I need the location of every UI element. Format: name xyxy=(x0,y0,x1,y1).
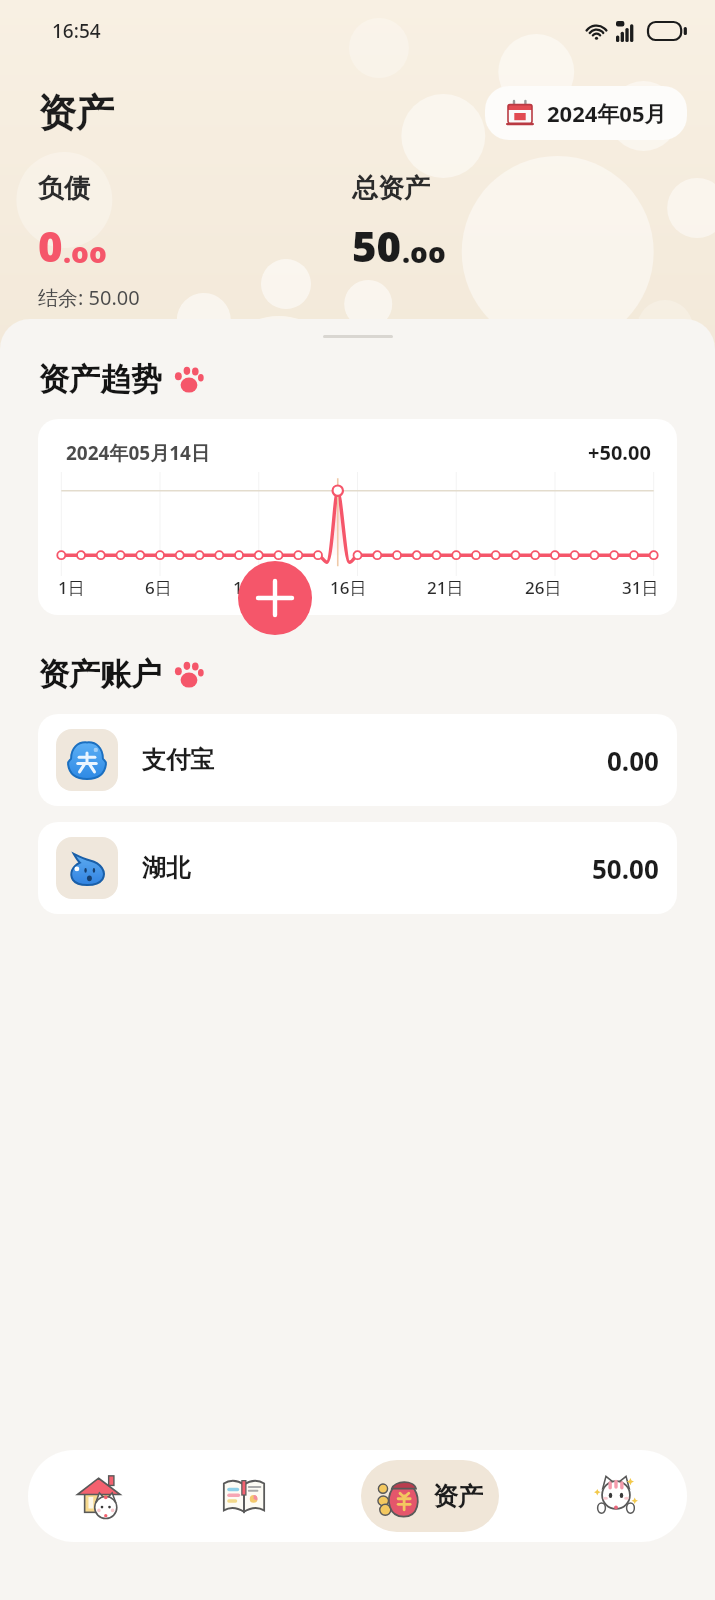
staticText: 50 xyxy=(352,217,402,274)
staticText: 资产账户 xyxy=(38,655,162,694)
staticText: .oo xyxy=(63,233,107,271)
staticText: 1日 xyxy=(58,576,85,599)
staticText: 16:54 xyxy=(52,18,101,44)
staticText: 16日 xyxy=(330,576,367,599)
button[interactable]: 资产 xyxy=(361,1460,499,1532)
button[interactable]: Home xyxy=(28,1450,172,1542)
staticText: 资产 xyxy=(433,1481,483,1512)
button[interactable]: Ledger xyxy=(172,1450,315,1542)
staticText: 总资产 xyxy=(352,172,430,205)
staticText: 26日 xyxy=(525,576,562,599)
staticText: 负债 xyxy=(38,172,90,205)
button[interactable]: Profile xyxy=(544,1450,687,1542)
button[interactable]: 2024年05月 xyxy=(485,86,687,140)
staticText: 0 xyxy=(38,217,63,274)
button[interactable]: 2024年05月14日 xyxy=(38,419,677,615)
staticText: 11日 xyxy=(233,576,270,599)
staticText: 0.00 xyxy=(607,743,659,778)
staticText: 湖北 xyxy=(142,853,190,883)
staticText: 50.00 xyxy=(592,851,659,886)
staticText: .oo xyxy=(402,233,446,271)
staticText: 资产 xyxy=(38,89,114,137)
staticText: 6日 xyxy=(145,576,172,599)
staticText: 结余: 50.00 xyxy=(38,284,140,311)
staticText: 31日 xyxy=(622,576,659,599)
staticText: 2024年05月14日 xyxy=(66,440,210,466)
staticText: 支付宝 xyxy=(142,745,214,775)
button[interactable]: 湖北 xyxy=(38,822,677,914)
button[interactable]: 支付宝 xyxy=(38,714,677,806)
staticText: 资产趋势 xyxy=(38,360,162,399)
button[interactable]: Add xyxy=(238,561,312,635)
staticText: 2024年05月 xyxy=(547,98,667,128)
staticText: +50.00 xyxy=(588,439,651,466)
staticText: 21日 xyxy=(427,576,464,599)
